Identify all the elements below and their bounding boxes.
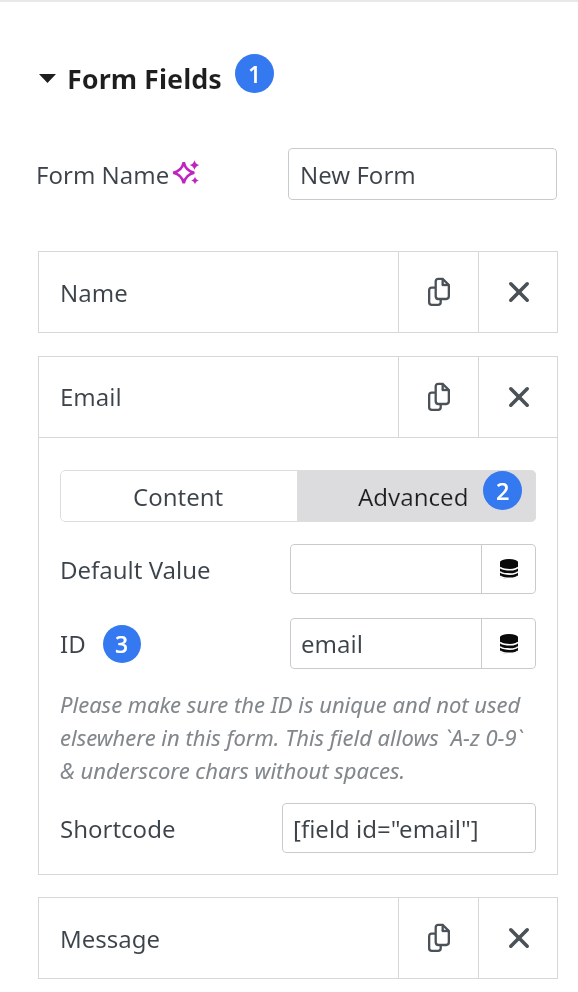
- staticText: Content: [133, 480, 224, 513]
- button[interactable]: Form Fields: [39, 59, 274, 98]
- staticText: [field id="email"]: [293, 812, 479, 845]
- staticText: ID: [60, 627, 86, 660]
- button[interactable]: [290, 544, 481, 594]
- staticText: Shortcode: [60, 812, 176, 845]
- button[interactable]: Delete: [479, 897, 558, 979]
- button[interactable]: email: [290, 618, 481, 669]
- button[interactable]: Message: [38, 897, 398, 979]
- button[interactable]: Duplicate: [399, 897, 478, 979]
- button[interactable]: Delete: [479, 356, 558, 437]
- staticText: Message: [60, 922, 161, 955]
- staticText: 3: [115, 629, 129, 660]
- staticText: Advanced: [358, 480, 469, 513]
- button[interactable]: Email: [38, 356, 398, 437]
- staticText: 2: [496, 475, 510, 507]
- staticText: Form Name: [36, 158, 170, 191]
- staticText: New Form: [300, 158, 416, 191]
- button[interactable]: Delete: [479, 251, 558, 333]
- button[interactable]: Duplicate: [399, 251, 478, 333]
- staticText: 1: [248, 58, 262, 90]
- button[interactable]: Database: [482, 618, 536, 669]
- staticText: Email: [60, 380, 122, 413]
- button[interactable]: Name: [38, 251, 398, 333]
- staticText: Form Fields: [67, 60, 222, 97]
- staticText: Name: [60, 276, 128, 309]
- staticText: email: [301, 627, 363, 660]
- button[interactable]: Advanced: [298, 470, 536, 522]
- button[interactable]: [field id="email"]: [282, 803, 536, 853]
- button[interactable]: New Form: [288, 148, 557, 200]
- button[interactable]: Content: [60, 470, 297, 522]
- staticText: Default Value: [60, 553, 211, 586]
- button[interactable]: Duplicate: [399, 356, 478, 437]
- button[interactable]: Database: [482, 544, 536, 594]
- staticText: Please make sure the ID is unique and no…: [60, 689, 536, 785]
